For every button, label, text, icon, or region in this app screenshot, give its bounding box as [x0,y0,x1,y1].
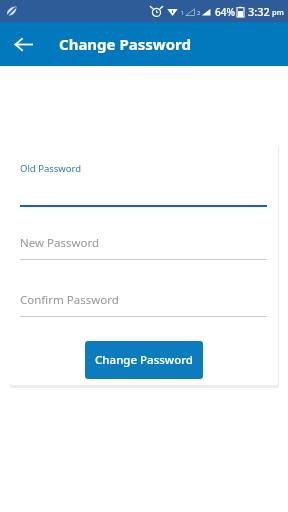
staticText: Confirm Password [20,292,119,308]
staticText: 1 [181,9,185,16]
staticText: New Password [20,235,100,251]
staticText: 2 [197,9,201,16]
staticText: 3:32 [248,4,270,19]
staticText: Change Password [59,34,191,54]
button[interactable]: Back [8,29,38,59]
staticText: 64% [215,5,235,19]
staticText: Old Password [20,162,82,175]
staticText: pm [272,7,284,17]
staticText: Change Password [95,352,193,368]
button[interactable]: Change Password [85,341,203,379]
